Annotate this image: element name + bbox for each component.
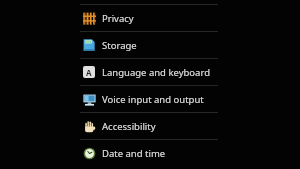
other: Language and keyboard (83, 66, 95, 78)
button[interactable]: Storage (80, 32, 218, 58)
staticText: Privacy (102, 12, 134, 25)
staticText: Date and time (102, 147, 166, 160)
other: Voice input and output (83, 93, 96, 106)
staticText: Language and keyboard (102, 66, 210, 79)
other: Date and time (83, 147, 96, 160)
button[interactable]: Date and time (80, 140, 218, 166)
button[interactable]: Voice input and output (80, 86, 218, 112)
button[interactable]: Language and keyboard (80, 59, 218, 85)
other: Storage (83, 39, 95, 51)
other: Accessibility (83, 120, 96, 133)
staticText: Storage (102, 39, 137, 52)
button[interactable]: Privacy (80, 5, 218, 31)
staticText: A (86, 67, 92, 78)
staticText: Voice input and output (102, 93, 204, 106)
other: Privacy (83, 12, 96, 25)
staticText: Accessibility (102, 120, 156, 133)
button[interactable]: Accessibility (80, 113, 218, 139)
